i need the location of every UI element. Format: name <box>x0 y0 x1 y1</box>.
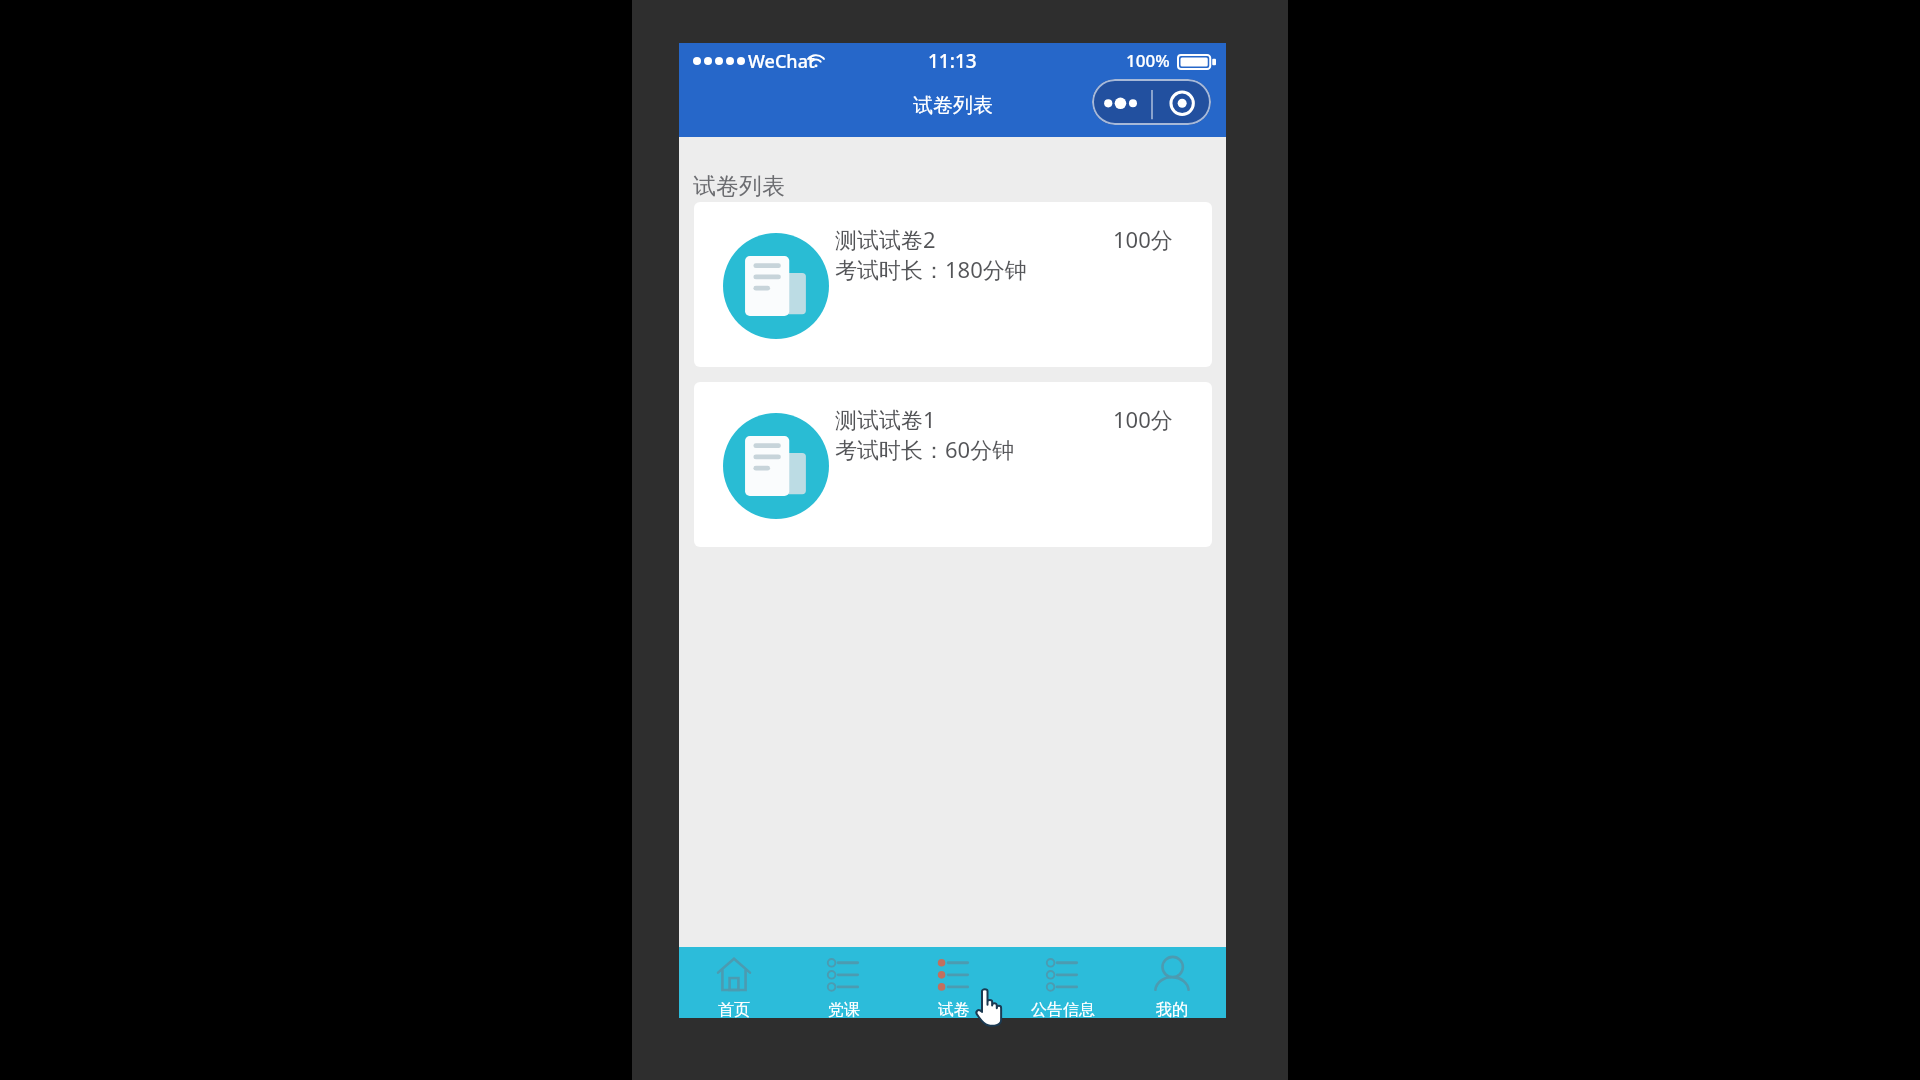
staticText: 党课 <box>828 1000 860 1018</box>
button[interactable]: 试卷 <box>899 947 1008 1018</box>
staticText: 试卷 <box>938 1000 970 1018</box>
staticText: 测试试卷1 <box>835 404 936 434</box>
button[interactable]: 测试试卷2 <box>694 202 1212 367</box>
button[interactable]: More options <box>1092 79 1211 125</box>
staticText: 100分 <box>1113 404 1173 434</box>
staticText: 考试时长：60分钟 <box>835 434 1015 464</box>
staticText: WeChat <box>748 49 815 74</box>
staticText: 试卷列表 <box>913 93 993 118</box>
staticText: 考试时长：180分钟 <box>835 254 1027 284</box>
staticText: 100分 <box>1113 224 1173 254</box>
button[interactable]: 测试试卷1 <box>694 382 1212 547</box>
button[interactable]: 首页 <box>679 947 789 1018</box>
button[interactable]: 我的 <box>1117 947 1226 1018</box>
staticText: 首页 <box>718 1000 750 1018</box>
staticText: 100% <box>1126 49 1170 72</box>
staticText: 11:13 <box>928 48 977 74</box>
staticText: 测试试卷2 <box>835 224 936 254</box>
staticText: 我的 <box>1156 1000 1188 1018</box>
staticText: 公告信息 <box>1031 1000 1095 1018</box>
button[interactable]: 党课 <box>789 947 899 1018</box>
button[interactable]: 公告信息 <box>1008 947 1117 1018</box>
staticText: 试卷列表 <box>693 172 785 201</box>
